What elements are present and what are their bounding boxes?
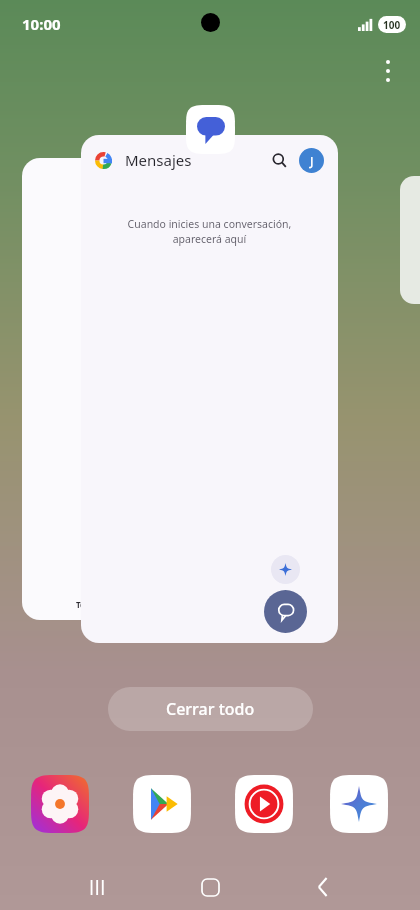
staticText: J — [310, 153, 314, 169]
button[interactable]: Recents — [80, 870, 114, 904]
button[interactable]: Search — [265, 146, 293, 174]
button[interactable]: Teclado — [62, 582, 120, 610]
staticText: Teclado — [76, 599, 107, 610]
staticText: Cerrar todo — [166, 698, 255, 720]
staticText: 100 — [383, 18, 401, 32]
button[interactable] — [400, 176, 420, 304]
staticText: Cuando inicies una conversación, aparece… — [97, 217, 322, 246]
button[interactable]: Home — [193, 870, 227, 904]
button[interactable]: YouTube Music — [235, 775, 293, 833]
button[interactable]: Messages — [186, 105, 235, 154]
staticText: 10:00 — [22, 14, 61, 34]
button[interactable]: Magic compose — [271, 555, 300, 584]
button[interactable]: Cerrar todo — [108, 687, 313, 731]
button[interactable]: More options — [376, 52, 400, 82]
button[interactable]: Play Store — [133, 775, 191, 833]
staticText: Mensajes — [125, 150, 192, 170]
button[interactable]: Galaxy Store — [31, 775, 89, 833]
button[interactable]: Start chat — [264, 590, 307, 633]
button[interactable]: 1 — [22, 158, 152, 620]
button[interactable]: Gemini — [330, 775, 388, 833]
button[interactable]: Mensajes — [81, 135, 338, 643]
button[interactable]: Account — [299, 148, 324, 173]
button[interactable]: Back — [306, 870, 340, 904]
